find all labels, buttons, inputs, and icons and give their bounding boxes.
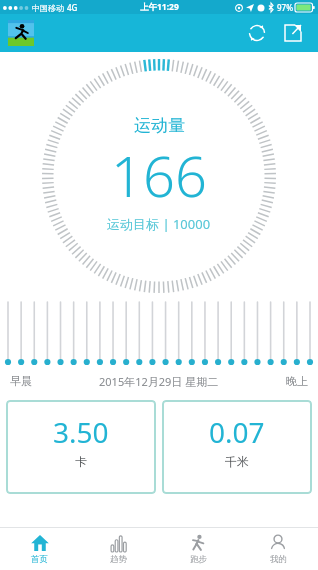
button[interactable]: 我的 xyxy=(238,528,318,570)
button[interactable]: 跑步 xyxy=(158,528,238,570)
staticText: 166 xyxy=(111,137,207,213)
staticText: 我的 xyxy=(270,554,287,565)
staticText: 早晨 xyxy=(10,374,32,388)
staticText: 2015年12月29日 星期二 xyxy=(99,374,219,389)
staticText: 晚上 xyxy=(286,374,308,388)
button[interactable]: 0.07 xyxy=(162,400,312,494)
button[interactable]: Daily activity chart xyxy=(0,300,318,368)
staticText: 趋势 xyxy=(110,554,127,565)
staticText: 97% xyxy=(277,2,293,13)
button[interactable]: App icon xyxy=(8,20,34,46)
staticText: 0.07 xyxy=(209,413,265,451)
staticText: 中国移动 xyxy=(32,3,64,13)
button[interactable]: 首页 xyxy=(0,528,79,570)
staticText: 跑步 xyxy=(190,554,207,565)
staticText: 首页 xyxy=(31,554,48,565)
staticText: 运动量 xyxy=(134,115,185,136)
staticText: 卡 xyxy=(75,454,87,469)
button[interactable]: 趋势 xyxy=(79,528,158,570)
staticText: 4G xyxy=(67,2,78,13)
staticText: 上午11:29 xyxy=(140,1,179,13)
button[interactable]: Share xyxy=(278,18,308,48)
staticText: 千米 xyxy=(225,454,249,469)
button[interactable]: 3.50 xyxy=(6,400,156,494)
button[interactable]: Activity dial, 166 of 10000 xyxy=(41,58,277,294)
staticText: 3.50 xyxy=(53,413,109,451)
button[interactable]: Refresh xyxy=(242,18,272,48)
staticText: 运动目标 | 10000 xyxy=(107,215,211,233)
